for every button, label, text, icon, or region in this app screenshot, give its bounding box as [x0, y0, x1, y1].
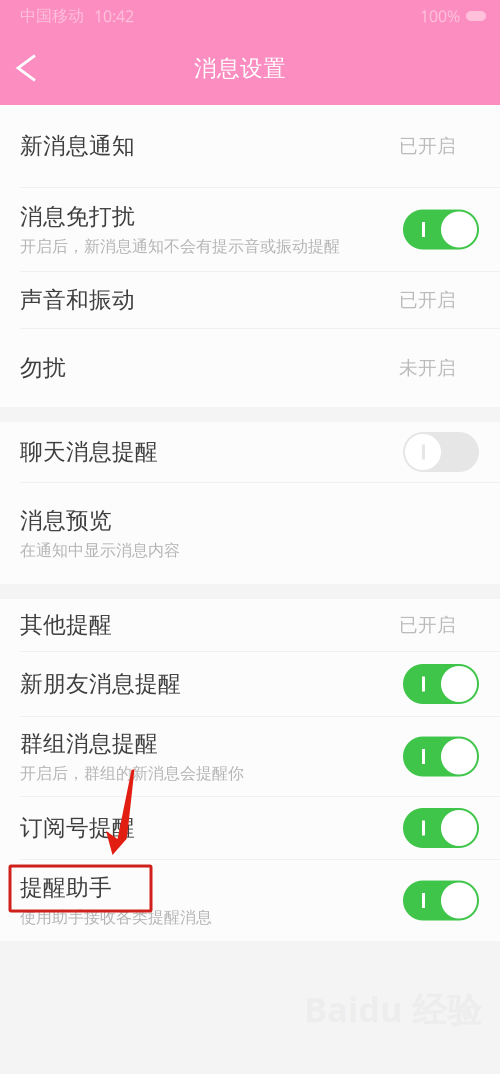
staticText: 消息设置: [194, 55, 286, 82]
staticText: 使用助手接收各类提醒消息: [20, 908, 212, 927]
button[interactable]: 订阅号提醒: [0, 797, 500, 859]
staticText: 已开启: [399, 134, 456, 157]
button[interactable]: Back: [6, 44, 52, 92]
staticText: 声音和振动: [20, 286, 135, 314]
staticText: 订阅号提醒: [20, 814, 135, 842]
staticText: 已开启: [399, 288, 456, 311]
button[interactable]: 消息免打扰: [0, 188, 500, 271]
staticText: 在通知中显示消息内容: [20, 541, 180, 560]
staticText: 勿扰: [20, 354, 66, 382]
button[interactable]: 勿扰: [0, 329, 500, 407]
staticText: 开启后，群组的新消息会提醒你: [20, 764, 244, 783]
staticText: 100%: [420, 5, 460, 27]
button[interactable]: 群组消息提醒: [0, 717, 500, 796]
staticText: 新朋友消息提醒: [20, 670, 181, 698]
button[interactable]: 新朋友消息提醒: [0, 652, 500, 716]
staticText: 中国移动: [20, 6, 84, 26]
staticText: 消息免打扰: [20, 203, 135, 231]
staticText: 已开启: [399, 613, 456, 636]
staticText: 群组消息提醒: [20, 730, 158, 758]
staticText: 开启后，新消息通知不会有提示音或振动提醒: [20, 237, 340, 256]
staticText: 新消息通知: [20, 132, 135, 160]
button[interactable]: 声音和振动: [0, 272, 500, 328]
staticText: 其他提醒: [20, 611, 112, 639]
button[interactable]: 聊天消息提醒: [0, 422, 500, 482]
button[interactable]: 消息预览: [0, 483, 500, 584]
staticText: 未开启: [399, 356, 456, 379]
staticText: 提醒助手: [20, 874, 112, 902]
button[interactable]: 提醒助手: [0, 860, 500, 941]
staticText: 聊天消息提醒: [20, 438, 158, 466]
staticText: 消息预览: [20, 507, 112, 535]
staticText: 10:42: [94, 5, 134, 27]
button[interactable]: 新消息通知: [0, 105, 500, 187]
button[interactable]: 其他提醒: [0, 599, 500, 651]
